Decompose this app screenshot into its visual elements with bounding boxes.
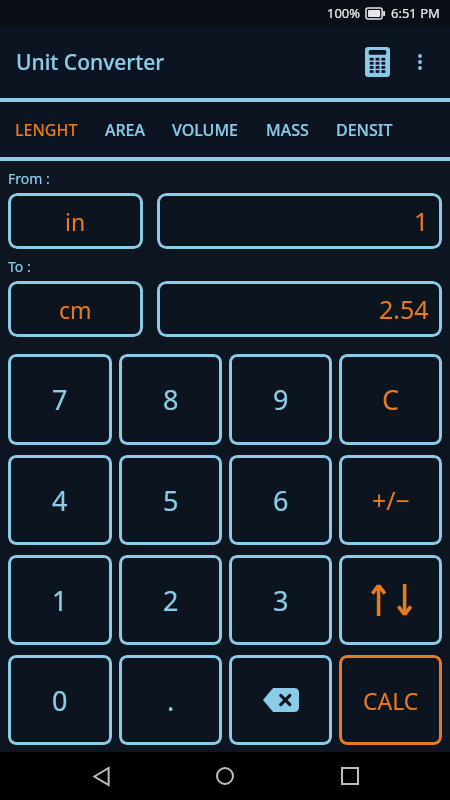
- button[interactable]: Home: [201, 752, 249, 800]
- button[interactable]: Backspace: [229, 655, 332, 745]
- button[interactable]: AREA: [105, 119, 145, 141]
- staticText: C: [382, 381, 400, 418]
- button[interactable]: 7: [8, 354, 112, 445]
- staticText: cm: [59, 294, 92, 325]
- staticText: 100%: [327, 4, 361, 22]
- button[interactable]: 8: [119, 354, 222, 445]
- button[interactable]: Back: [77, 752, 125, 800]
- staticText: Unit Converter: [16, 48, 165, 77]
- staticText: 6: [273, 482, 289, 519]
- button[interactable]: .: [119, 655, 222, 745]
- button[interactable]: 4: [8, 455, 112, 545]
- button[interactable]: DENSIT: [336, 119, 393, 141]
- button[interactable]: in: [8, 193, 143, 249]
- staticText: From :: [8, 169, 50, 188]
- staticText: To :: [8, 257, 31, 276]
- button[interactable]: 1: [157, 193, 442, 249]
- staticText: 5: [163, 482, 179, 519]
- button[interactable]: 1: [8, 555, 112, 645]
- staticText: LENGHT: [15, 119, 78, 141]
- staticText: +/−: [372, 483, 410, 517]
- button[interactable]: 6: [229, 455, 332, 545]
- button[interactable]: C: [339, 354, 442, 445]
- staticText: 7: [52, 381, 68, 418]
- button[interactable]: 2.54: [157, 281, 442, 337]
- button[interactable]: cm: [8, 281, 143, 337]
- button[interactable]: Calculator: [354, 39, 400, 85]
- button[interactable]: MASS: [266, 119, 309, 141]
- button[interactable]: 3: [229, 555, 332, 645]
- staticText: 0: [52, 682, 68, 719]
- staticText: CALC: [363, 685, 419, 716]
- button[interactable]: CALC: [339, 655, 442, 745]
- staticText: DENSIT: [336, 119, 393, 141]
- button[interactable]: Swap units: [339, 555, 442, 645]
- button[interactable]: 2: [119, 555, 222, 645]
- button[interactable]: 0: [8, 655, 112, 745]
- staticText: 8: [163, 381, 179, 418]
- staticText: MASS: [266, 119, 309, 141]
- staticText: VOLUME: [172, 119, 239, 141]
- button[interactable]: 9: [229, 354, 332, 445]
- button[interactable]: VOLUME: [172, 119, 239, 141]
- staticText: 6:51 PM: [391, 4, 440, 22]
- button[interactable]: 5: [119, 455, 222, 545]
- staticText: .: [167, 682, 175, 719]
- button[interactable]: Recents: [326, 752, 374, 800]
- staticText: 9: [273, 381, 289, 418]
- button[interactable]: More options: [400, 42, 440, 82]
- staticText: 1: [52, 582, 68, 619]
- staticText: 2: [163, 582, 179, 619]
- staticText: 2.54: [379, 292, 429, 326]
- staticText: in: [65, 206, 86, 237]
- staticText: 1: [414, 204, 429, 238]
- button[interactable]: +/−: [339, 455, 442, 545]
- staticText: 4: [52, 482, 68, 519]
- button[interactable]: LENGHT: [15, 119, 78, 141]
- staticText: 3: [273, 582, 289, 619]
- staticText: AREA: [105, 119, 145, 141]
